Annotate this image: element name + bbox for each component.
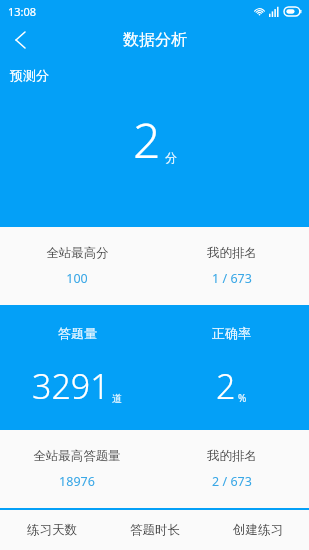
button[interactable]: 我的排名 xyxy=(154,245,309,287)
button[interactable]: Back xyxy=(0,22,40,58)
button[interactable]: 全站最高答题量 xyxy=(0,448,154,490)
staticText: 答题量 xyxy=(58,325,97,341)
staticText: 全站最高答题量 xyxy=(33,448,121,464)
button[interactable]: 练习天数 xyxy=(0,510,103,550)
staticText: 创建练习 xyxy=(233,522,283,538)
button[interactable]: 答题量 xyxy=(0,325,154,409)
staticText: 分 xyxy=(165,150,177,165)
staticText: % xyxy=(238,391,247,405)
staticText: 18976 xyxy=(59,473,95,490)
staticText: 1 / 673 xyxy=(212,270,252,287)
staticText: 我的排名 xyxy=(207,448,257,464)
staticText: 练习天数 xyxy=(27,522,77,538)
staticText: 3291 xyxy=(32,363,110,409)
staticText: 2 xyxy=(133,107,161,172)
staticText: 数据分析 xyxy=(123,30,187,50)
button[interactable]: 创建练习 xyxy=(206,510,309,550)
button[interactable]: 全站最高分 xyxy=(0,245,154,287)
button[interactable]: 我的排名 xyxy=(154,448,309,490)
button[interactable]: 正确率 xyxy=(154,325,309,409)
staticText: 我的排名 xyxy=(207,245,257,261)
button[interactable]: 答题时长 xyxy=(103,510,206,550)
staticText: 正确率 xyxy=(212,325,251,341)
staticText: 100 xyxy=(66,270,88,287)
staticText: 2 xyxy=(216,363,236,409)
staticText: 道 xyxy=(112,392,122,405)
staticText: 答题时长 xyxy=(130,522,180,538)
staticText: 2 / 673 xyxy=(212,473,252,490)
staticText: 预测分 xyxy=(10,67,49,83)
staticText: 13:08 xyxy=(8,4,37,19)
staticText: 全站最高分 xyxy=(46,245,109,261)
